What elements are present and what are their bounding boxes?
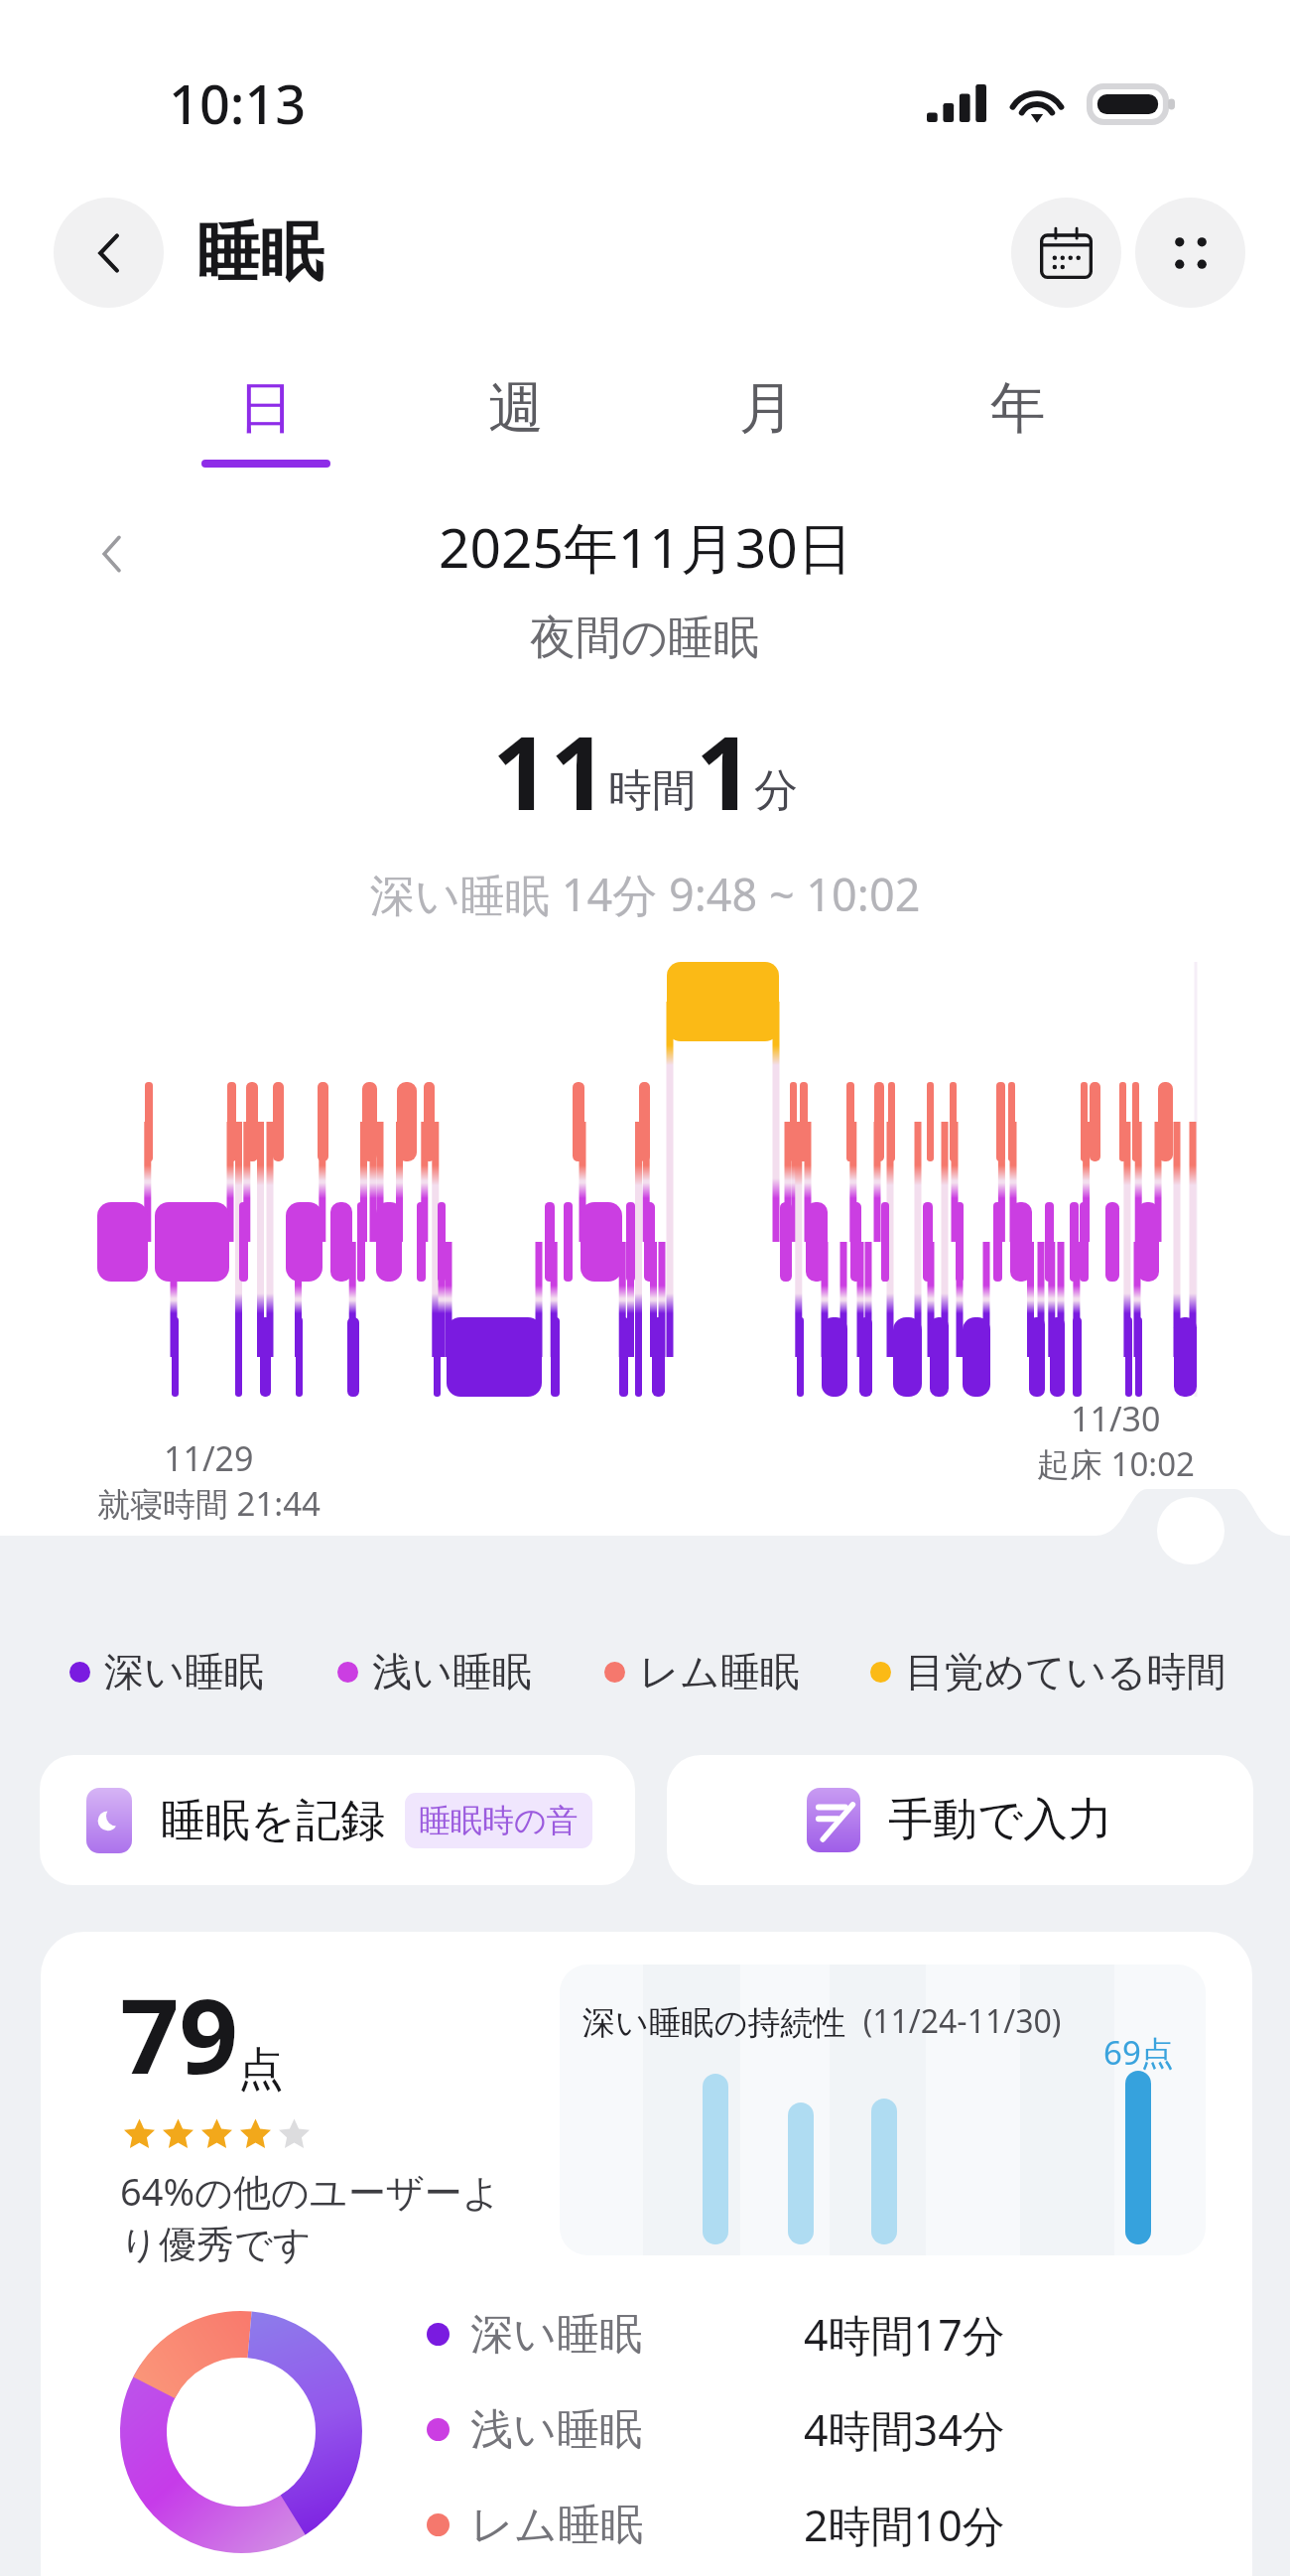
button[interactable]: 睡眠を記録 [40,1755,635,1885]
staticText: レム睡眠 [639,1647,800,1696]
staticText: 11 [492,702,608,840]
button[interactable]: Calendar [1011,198,1121,308]
button[interactable]: 睡眠時の音 [405,1793,592,1848]
button[interactable]: More options [1135,198,1245,308]
staticText: 週 [488,373,544,444]
button[interactable]: 手動で入力 [667,1755,1253,1885]
staticText: 11/30 [1071,1396,1161,1441]
staticText: 79 [120,1964,238,2104]
staticText: 夜間の睡眠 [530,610,760,667]
staticText: 就寝時間 21:44 [97,1481,321,1526]
button[interactable]: 日 [141,373,391,482]
staticText: 睡眠を記録 [161,1793,386,1849]
staticText: 深い睡眠 [470,2308,804,2362]
staticText: 69点 [1103,2030,1174,2075]
staticText: 10:13 [169,67,307,140]
staticText: 4時間17分 [804,2305,1005,2364]
staticText: 目覚めている時間 [905,1647,1226,1696]
staticText: 深い睡眠 14分 9:48 ~ 10:02 [370,864,921,924]
staticText: 深い睡眠 [104,1647,264,1696]
staticText: 浅い睡眠 [470,2403,804,2457]
staticText: 時間 [608,763,696,818]
staticText: 睡眠 [196,212,323,293]
staticText: レム睡眠 [470,2499,804,2552]
button[interactable]: 年 [892,373,1143,482]
staticText: 1 [696,702,754,840]
staticText: 2時間10分 [804,2496,1005,2554]
staticText: 点 [238,2041,284,2099]
staticText: 手動で入力 [888,1792,1113,1848]
staticText: 起床 10:02 [1037,1441,1195,1486]
button[interactable]: 週 [391,373,641,482]
staticText: 年 [990,373,1046,444]
staticText: 深い睡眠の持続性 [582,2002,846,2044]
button[interactable]: 月 [641,373,892,482]
button[interactable]: Previous day [77,519,147,589]
staticText: (11/24-11/30) [846,1999,1062,2043]
staticText: 日 [238,373,294,444]
staticText: 浅い睡眠 [372,1647,532,1696]
staticText: 4時間34分 [804,2400,1005,2459]
staticText: 睡眠時の音 [419,1801,579,1840]
staticText: 2025年11月30日 [439,509,852,584]
staticText: 64%の他のユーザーよ り優秀です [120,2165,501,2268]
staticText: 分 [754,763,798,818]
staticText: 11/29 [164,1435,254,1481]
staticText: 月 [739,373,795,444]
button[interactable]: Back [54,198,164,308]
